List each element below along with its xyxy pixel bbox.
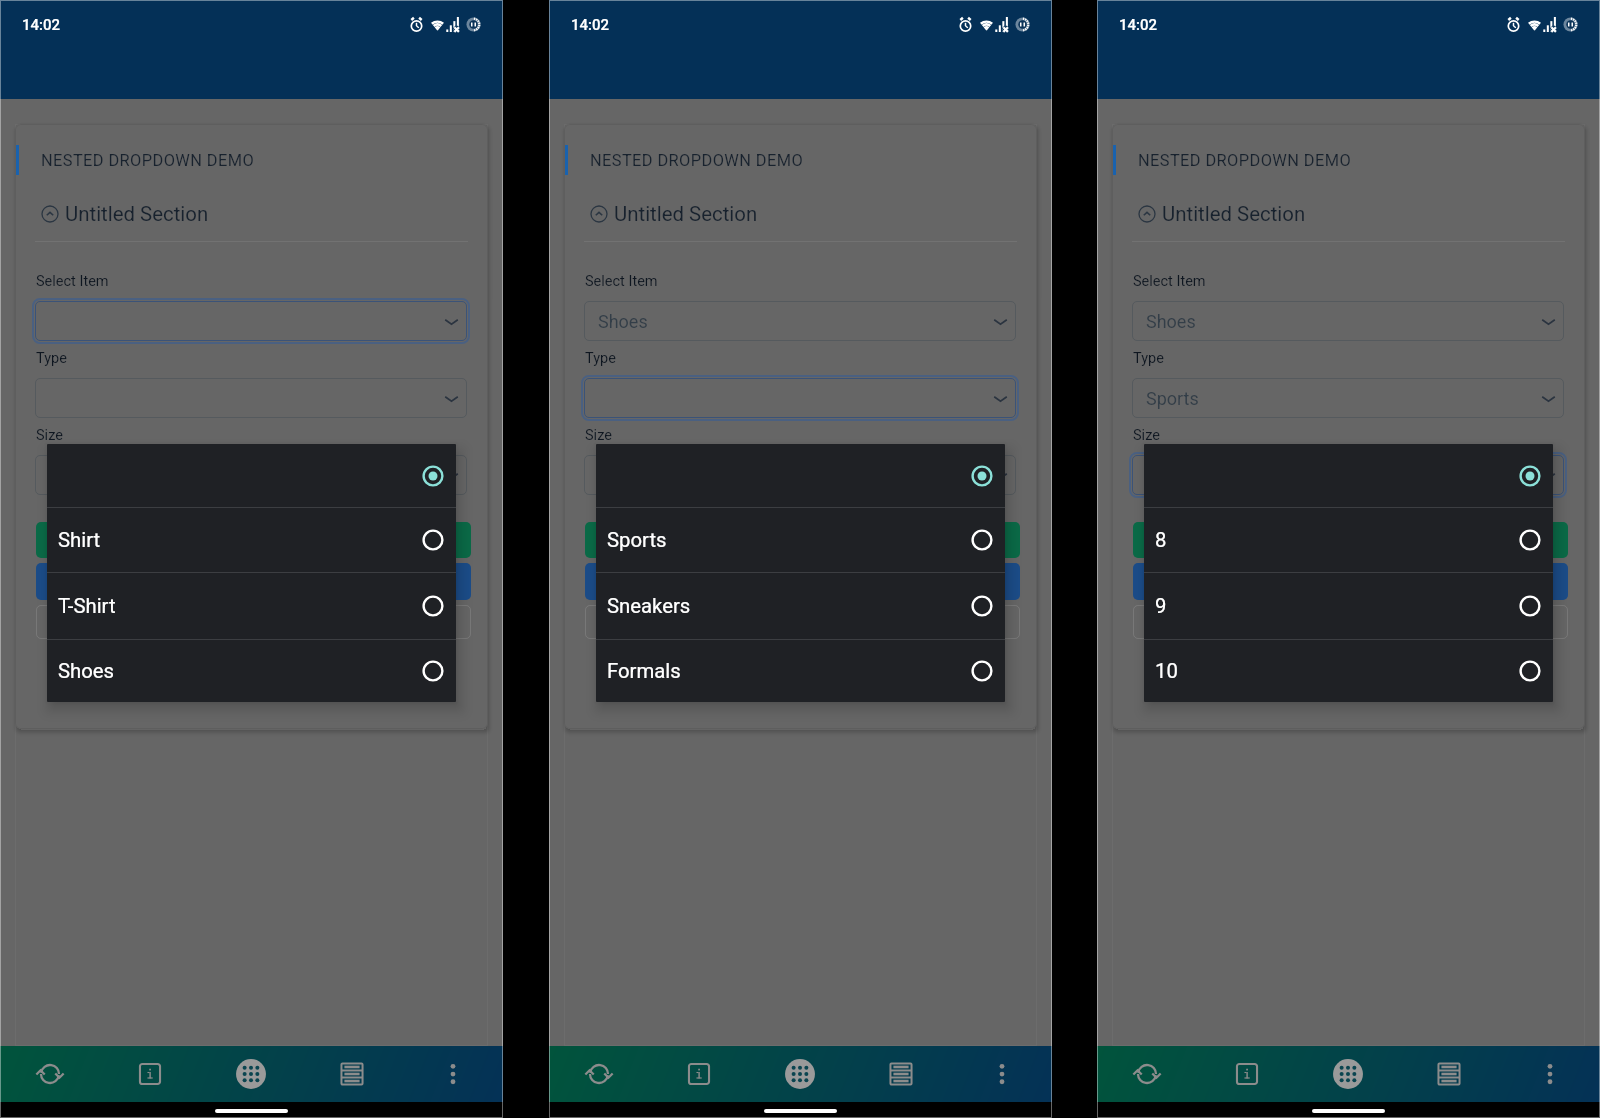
staticText: Formals: [607, 659, 681, 683]
button[interactable]: Reset: [36, 605, 471, 639]
staticText: 14:02: [1119, 16, 1158, 34]
button[interactable]: Save: [36, 563, 471, 600]
button[interactable]: Info: [100, 1046, 200, 1102]
button[interactable]: More options: [951, 1046, 1052, 1102]
button[interactable]: Submit: [1133, 522, 1568, 558]
staticText: Shirt: [58, 528, 101, 552]
button[interactable]: Untitled Section: [41, 202, 209, 226]
button[interactable]: Sync: [1097, 1046, 1197, 1102]
button[interactable]: Sports: [596, 508, 1005, 572]
button[interactable]: Formals: [596, 640, 1005, 702]
button[interactable]: Submit: [36, 522, 471, 558]
button[interactable]: Reset: [585, 605, 1020, 639]
staticText: Type: [1133, 350, 1164, 367]
button[interactable]: Type dropdown: [1132, 378, 1564, 418]
button[interactable]: Submit: [585, 522, 1020, 558]
button[interactable]: Select Item dropdown: [35, 301, 467, 341]
staticText: NESTED DROPDOWN DEMO: [1138, 151, 1352, 170]
button[interactable]: Select Item dropdown: [1132, 301, 1564, 341]
button[interactable]: Clear selection: [596, 444, 1005, 507]
staticText: 10: [1155, 659, 1178, 683]
button[interactable]: Sync: [0, 1046, 100, 1102]
button[interactable]: Save: [1133, 563, 1568, 600]
staticText: Shoes: [598, 311, 648, 332]
button[interactable]: Apps: [749, 1046, 850, 1102]
button[interactable]: Apps: [1297, 1046, 1398, 1102]
staticText: Type: [36, 350, 67, 367]
button[interactable]: Save: [585, 563, 1020, 600]
button[interactable]: Reset: [1133, 605, 1568, 639]
button[interactable]: List: [1398, 1046, 1499, 1102]
staticText: T-Shirt: [58, 594, 116, 618]
button[interactable]: List: [301, 1046, 402, 1102]
staticText: NESTED DROPDOWN DEMO: [590, 151, 804, 170]
staticText: Sneakers: [607, 594, 691, 618]
staticText: Untitled Section: [65, 202, 209, 226]
button[interactable]: More options: [1499, 1046, 1600, 1102]
button[interactable]: 9: [1144, 573, 1553, 639]
button[interactable]: Size dropdown: [35, 455, 467, 495]
staticText: Select Item: [36, 273, 109, 290]
button[interactable]: 10: [1144, 640, 1553, 702]
staticText: Shoes: [58, 659, 115, 683]
staticText: 8: [1155, 528, 1167, 552]
button[interactable]: Apps: [200, 1046, 301, 1102]
button[interactable]: Type dropdown: [35, 378, 467, 418]
button[interactable]: Shoes: [47, 640, 456, 702]
staticText: Untitled Section: [1162, 202, 1306, 226]
staticText: Untitled Section: [614, 202, 758, 226]
button[interactable]: Shirt: [47, 508, 456, 572]
staticText: Size: [585, 427, 612, 444]
staticText: NESTED DROPDOWN DEMO: [41, 151, 255, 170]
button[interactable]: List: [850, 1046, 951, 1102]
button[interactable]: Clear selection: [1144, 444, 1553, 507]
button[interactable]: Sneakers: [596, 573, 1005, 639]
button[interactable]: 8: [1144, 508, 1553, 572]
button[interactable]: Size dropdown: [1132, 455, 1564, 495]
staticText: 9: [1155, 594, 1167, 618]
button[interactable]: Untitled Section: [590, 202, 758, 226]
button[interactable]: Sync: [549, 1046, 649, 1102]
staticText: 14:02: [571, 16, 610, 34]
staticText: Select Item: [1133, 273, 1206, 290]
staticText: Size: [1133, 427, 1160, 444]
button[interactable]: Info: [649, 1046, 749, 1102]
staticText: Sports: [607, 528, 667, 552]
button[interactable]: T-Shirt: [47, 573, 456, 639]
button[interactable]: Info: [1197, 1046, 1297, 1102]
button[interactable]: Type dropdown: [584, 378, 1016, 418]
button[interactable]: Clear selection: [47, 444, 456, 507]
button[interactable]: Size dropdown: [584, 455, 1016, 495]
button[interactable]: More options: [402, 1046, 503, 1102]
staticText: 14:02: [22, 16, 61, 34]
staticText: Shoes: [1146, 311, 1196, 332]
button[interactable]: Select Item dropdown: [584, 301, 1016, 341]
staticText: Select Item: [585, 273, 658, 290]
staticText: Sports: [1146, 388, 1199, 409]
staticText: Type: [585, 350, 616, 367]
button[interactable]: Untitled Section: [1138, 202, 1306, 226]
staticText: Size: [36, 427, 63, 444]
